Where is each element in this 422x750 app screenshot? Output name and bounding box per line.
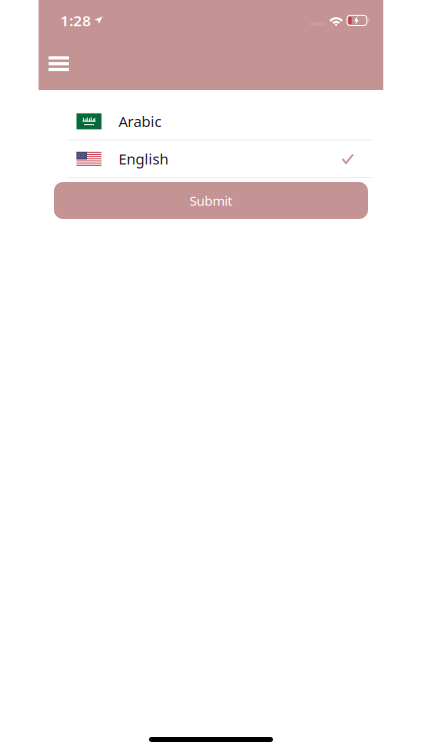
staticText: English (118, 149, 168, 169)
staticText: Arabic (118, 111, 161, 131)
button[interactable]: English (38, 140, 383, 178)
button[interactable]: Arabic (38, 103, 383, 140)
button[interactable]: Submit (54, 182, 368, 219)
button[interactable]: Menu (38, 47, 79, 81)
staticText: 1:28 (60, 10, 91, 31)
staticText: Submit (189, 191, 232, 210)
